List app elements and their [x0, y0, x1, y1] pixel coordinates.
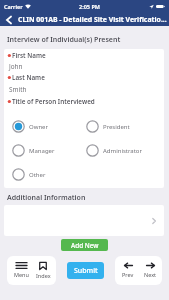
staticText: Title of Person Interviewed	[12, 97, 95, 106]
staticText: Smith	[9, 85, 27, 94]
button[interactable]: Owner	[12, 120, 48, 133]
staticText: Index	[36, 272, 51, 279]
button[interactable]: Next	[139, 256, 161, 285]
button[interactable]: Manager	[12, 144, 55, 157]
button[interactable]: Administrator	[86, 144, 142, 157]
staticText: President	[103, 123, 130, 131]
staticText: Prev	[122, 271, 134, 278]
staticText: John	[9, 62, 23, 71]
button[interactable]: Menu	[10, 256, 32, 285]
staticText: Add New	[71, 241, 99, 250]
button[interactable]: Index	[32, 256, 54, 285]
staticText: Last Name	[12, 73, 45, 82]
button[interactable]: Submit	[67, 262, 104, 279]
button[interactable]: Other	[12, 168, 46, 181]
staticText: Additional Information	[7, 193, 86, 203]
staticText: Manager	[29, 147, 55, 155]
staticText: 2:05 PM	[79, 3, 100, 10]
staticText: Menu	[14, 271, 29, 278]
button[interactable]: Add New	[61, 239, 108, 251]
staticText: Other	[29, 171, 46, 179]
staticText: Submit	[74, 266, 98, 276]
staticText: Carrier	[4, 3, 23, 10]
staticText: Interview of Individual(s) Present	[7, 35, 121, 45]
staticText: Next	[144, 271, 157, 278]
staticText: Owner	[29, 123, 48, 131]
button[interactable]: Back	[0, 13, 18, 26]
staticText: Administrator	[103, 147, 142, 155]
staticText: First Name	[12, 51, 46, 60]
staticText: CLIN 001AB - Detailed Site Visit Verific…	[18, 15, 167, 24]
button[interactable]: President	[86, 120, 130, 133]
button[interactable]: Prev	[117, 256, 139, 285]
